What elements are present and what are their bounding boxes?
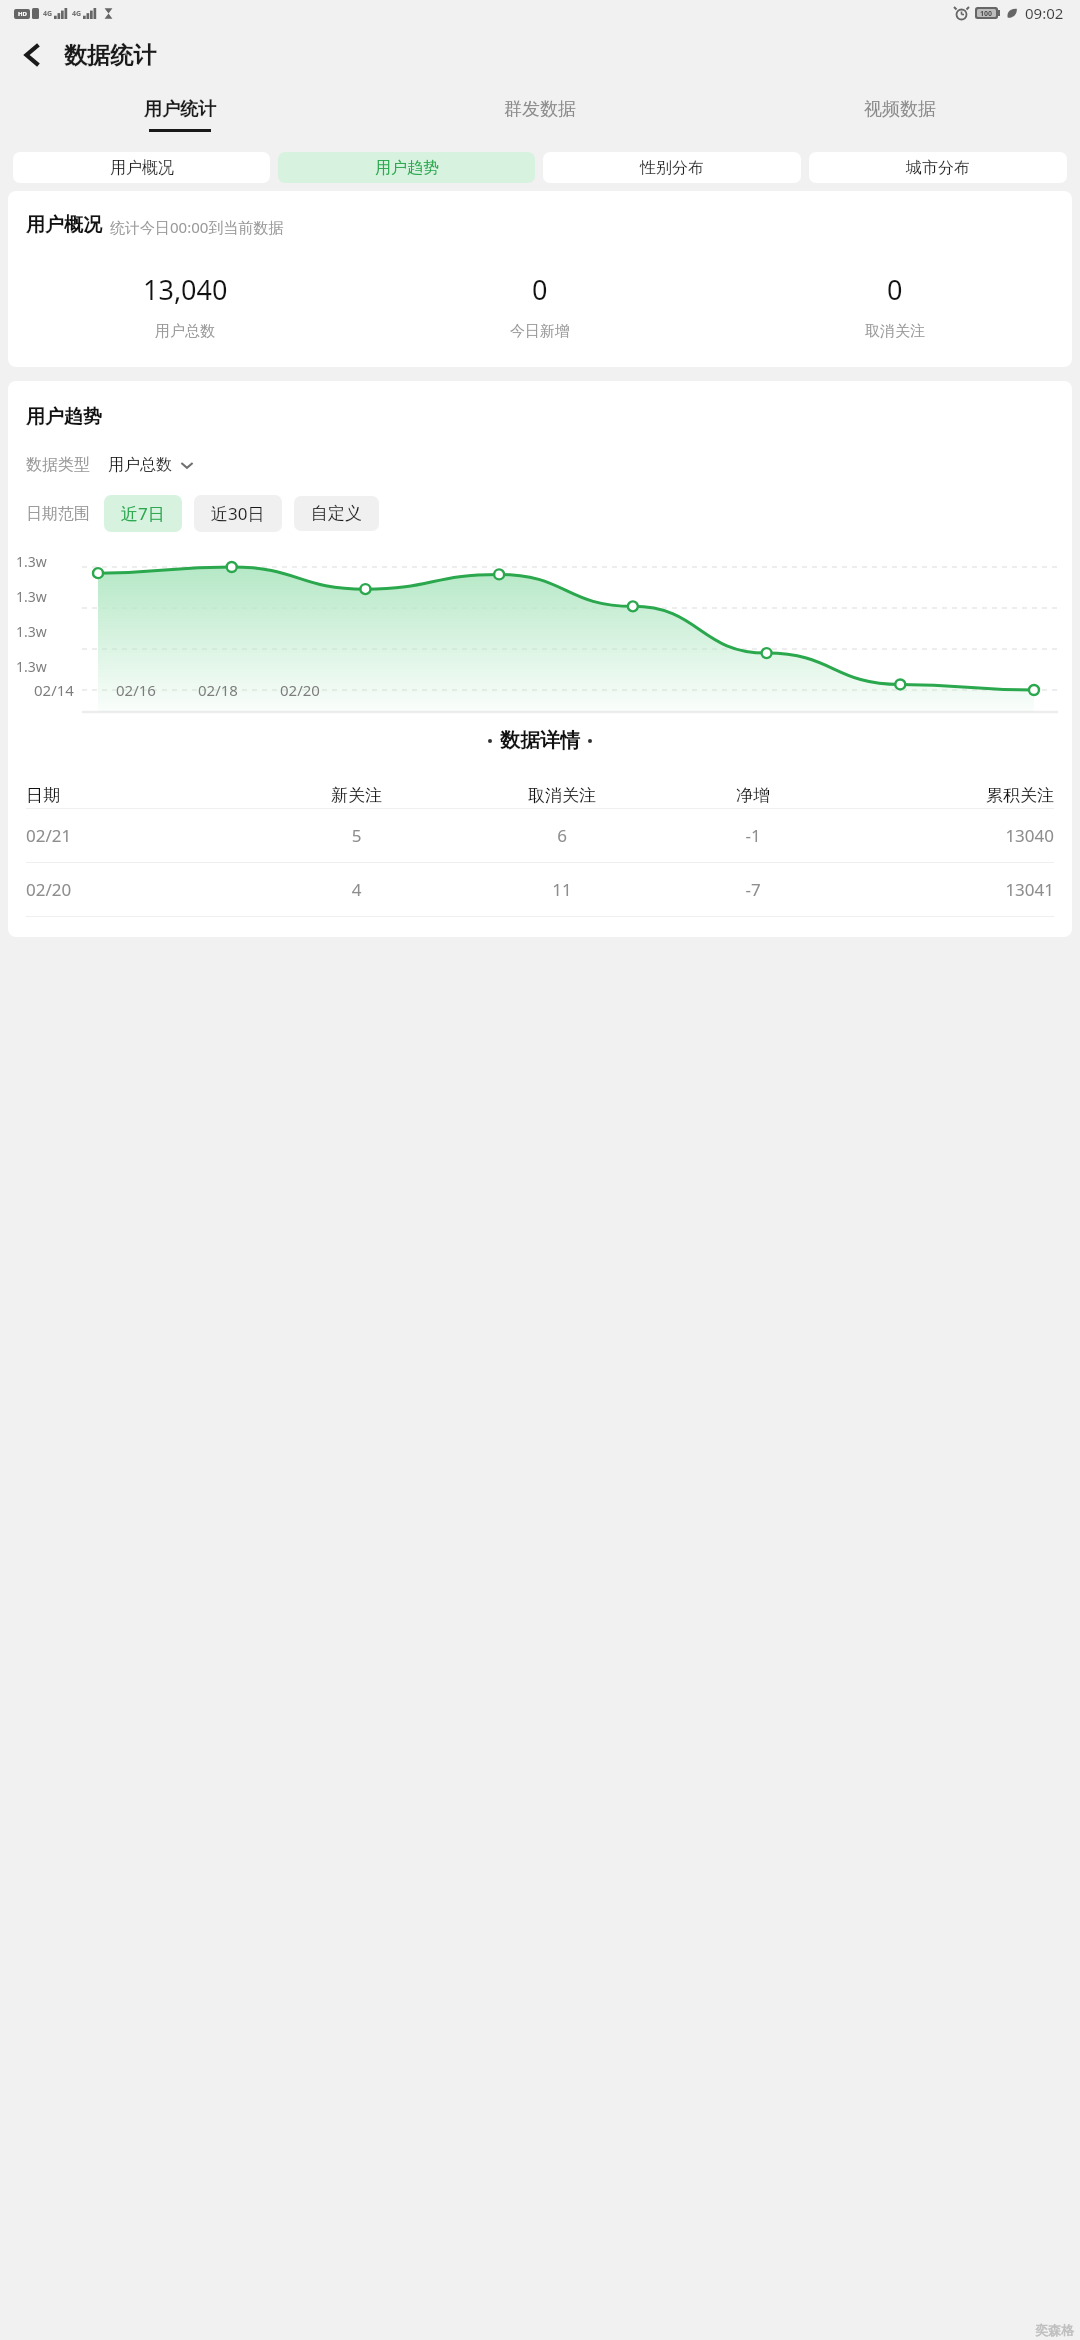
staticText: 近7日 <box>121 502 165 525</box>
button[interactable]: 性别分布 <box>543 152 801 183</box>
staticText: 13041 <box>834 878 1054 901</box>
staticText: 02/18 <box>198 680 238 700</box>
staticText: 1.3w <box>16 622 47 641</box>
staticText: 用户趋势 <box>375 158 439 178</box>
staticText: 4G <box>43 9 53 19</box>
staticText: 0 <box>887 271 903 308</box>
staticText: 02/20 <box>26 878 261 901</box>
staticText: 用户总数 <box>155 322 215 341</box>
staticText: -1 <box>672 824 834 847</box>
staticText: 100 <box>980 9 993 17</box>
button[interactable]: 城市分布 <box>809 152 1067 183</box>
staticText: 取消关注 <box>452 785 672 806</box>
staticText: 1.3w <box>16 657 47 676</box>
button[interactable]: 02/20 <box>8 863 1072 916</box>
button[interactable]: 02/21 <box>8 809 1072 862</box>
staticText: 群发数据 <box>504 98 576 121</box>
staticText: 02/16 <box>116 680 156 700</box>
button[interactable]: 近7日 <box>104 495 182 532</box>
staticText: 6 <box>452 824 672 847</box>
staticText: 近30日 <box>211 502 265 525</box>
staticText: 城市分布 <box>906 158 970 178</box>
staticText: 1.3w <box>16 552 47 571</box>
staticText: 净增 <box>672 785 834 806</box>
staticText: 用户统计 <box>144 98 216 121</box>
button[interactable]: 群发数据 <box>360 84 720 146</box>
staticText: 09:02 <box>1025 3 1064 23</box>
staticText: 1.3w <box>16 587 47 606</box>
staticText: 用户概况 <box>110 158 174 178</box>
staticText: 用户总数 <box>108 455 172 475</box>
staticText: 取消关注 <box>865 322 925 341</box>
staticText: 累积关注 <box>834 785 1054 806</box>
staticText: 02/20 <box>280 680 320 700</box>
staticText: 用户趋势 <box>26 405 102 429</box>
staticText: 13,040 <box>143 271 228 308</box>
staticText: 5 <box>261 824 452 847</box>
button[interactable]: 用户概况 <box>13 152 270 183</box>
staticText: 4G <box>72 9 82 19</box>
staticText: 11 <box>452 878 672 901</box>
button[interactable]: 视频数据 <box>720 84 1080 146</box>
staticText: 日期范围 <box>26 504 90 524</box>
staticText: 用户概况 <box>26 213 102 237</box>
staticText: 日期 <box>26 785 261 806</box>
staticText: 数据类型 <box>26 455 90 475</box>
staticText: 今日新增 <box>510 322 570 341</box>
staticText: 02/21 <box>26 824 261 847</box>
button[interactable]: 近30日 <box>194 495 282 532</box>
button[interactable]: 用户统计 <box>0 84 360 146</box>
staticText: 统计今日00:00到当前数据 <box>110 217 284 237</box>
button[interactable]: Back <box>8 31 56 79</box>
staticText: 数据详情 <box>500 728 580 753</box>
staticText: 自定义 <box>311 503 362 524</box>
staticText: 数据统计 <box>64 41 156 70</box>
staticText: 02/14 <box>34 680 74 700</box>
staticText: -7 <box>672 878 834 901</box>
staticText: 性别分布 <box>640 158 704 178</box>
staticText: 4 <box>261 878 452 901</box>
staticText: 视频数据 <box>864 98 936 121</box>
staticText: HD <box>18 10 27 18</box>
staticText: 0 <box>532 271 548 308</box>
staticText: 奕森格 <box>1035 2322 1074 2338</box>
button[interactable]: 用户趋势 <box>278 152 535 183</box>
staticText: 新关注 <box>261 785 452 806</box>
staticText: 13040 <box>834 824 1054 847</box>
button[interactable]: 用户总数 <box>108 451 194 479</box>
button[interactable]: 自定义 <box>294 496 379 531</box>
